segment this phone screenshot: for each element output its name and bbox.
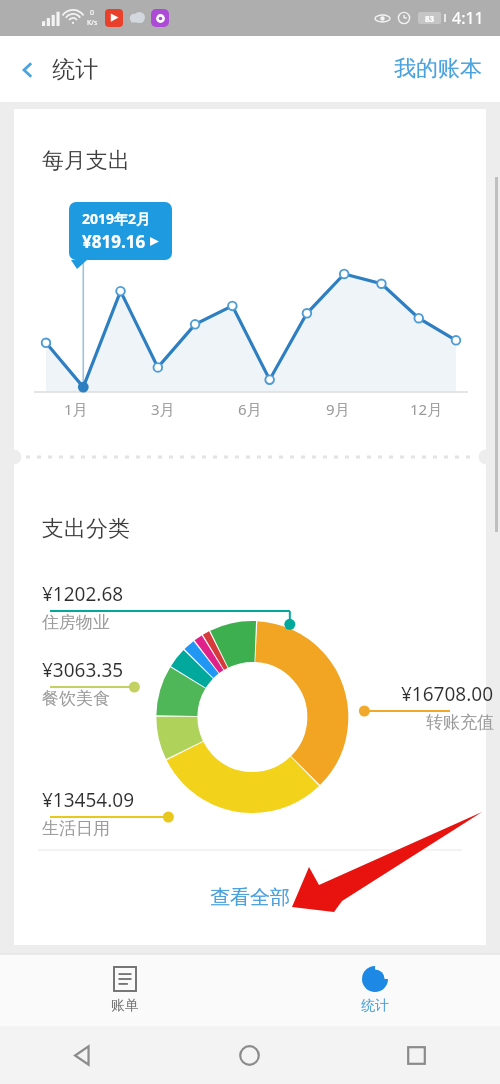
staticText: 9月 — [326, 399, 350, 419]
staticText: 生活日用 — [42, 818, 110, 839]
staticText: 统计 — [361, 997, 389, 1015]
button[interactable]: Home — [166, 1026, 333, 1084]
button[interactable]: Back — [0, 45, 112, 94]
staticText: 每月支出 — [42, 147, 130, 175]
staticText: ¥13454.09 — [42, 787, 135, 813]
button[interactable]: 查看全部 — [180, 871, 320, 924]
staticText: 我的账本 — [394, 55, 482, 83]
staticText: 6月 — [238, 399, 262, 419]
staticText: ¥819.16 — [82, 230, 146, 253]
staticText: ¥3063.35 — [42, 657, 124, 683]
other: Home — [239, 1045, 260, 1066]
staticText: 查看全部 — [210, 885, 290, 910]
staticText: 0 — [90, 8, 95, 18]
button[interactable]: Recents — [333, 1026, 500, 1084]
staticText: 3月 — [151, 399, 175, 419]
staticText: 4:11 — [452, 7, 484, 29]
staticText: 1月 — [64, 399, 88, 419]
staticText: 住房物业 — [42, 612, 110, 633]
staticText: 统计 — [52, 55, 98, 84]
staticText: K/s — [87, 18, 98, 28]
button[interactable]: 账单 — [0, 954, 250, 1026]
other: Back — [18, 60, 38, 80]
staticText: 2019年2月 — [82, 209, 151, 228]
staticText: 账单 — [111, 997, 139, 1015]
staticText: 支出分类 — [42, 515, 130, 543]
staticText: ¥16708.00 — [401, 681, 494, 707]
button[interactable]: Back — [0, 1026, 166, 1084]
staticText: 12月 — [410, 399, 443, 419]
other: Back — [73, 1045, 94, 1066]
staticText: 餐饮美食 — [42, 688, 110, 709]
button[interactable]: 2019年2月 — [69, 202, 172, 260]
button[interactable]: 我的账本 — [376, 43, 500, 95]
staticText: 转账充值 — [426, 712, 494, 733]
other: Recents — [407, 1046, 426, 1065]
staticText: 83 — [425, 13, 435, 24]
button[interactable]: 统计 — [250, 954, 500, 1026]
staticText: ¥1202.68 — [42, 581, 124, 607]
